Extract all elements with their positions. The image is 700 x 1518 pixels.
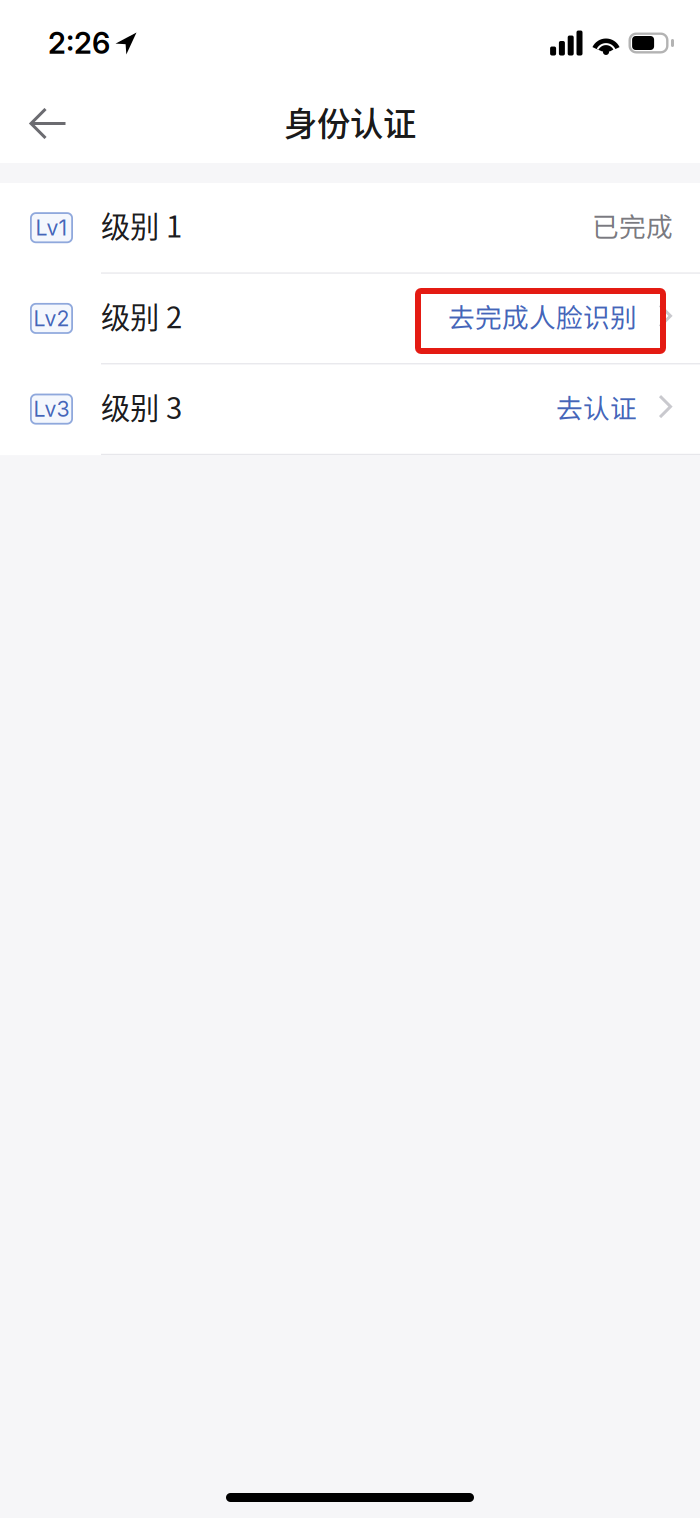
button[interactable]: Lv3: [0, 364, 700, 454]
button[interactable]: Lv2: [0, 274, 700, 363]
staticText: 身份认证: [284, 97, 416, 146]
staticText: 2:26: [48, 25, 110, 61]
button[interactable]: Back: [0, 86, 81, 163]
staticText: 去完成人脸识别: [448, 297, 637, 335]
staticText: Lv1: [35, 215, 67, 241]
staticText: Lv2: [33, 305, 69, 331]
staticText: Lv3: [33, 396, 69, 422]
staticText: 已完成: [592, 206, 673, 244]
staticText: 级别 1: [101, 203, 182, 246]
button[interactable]: Lv1: [0, 183, 700, 272]
staticText: 去认证: [556, 387, 637, 426]
staticText: 级别 3: [101, 385, 182, 427]
staticText: 级别 2: [101, 294, 182, 337]
